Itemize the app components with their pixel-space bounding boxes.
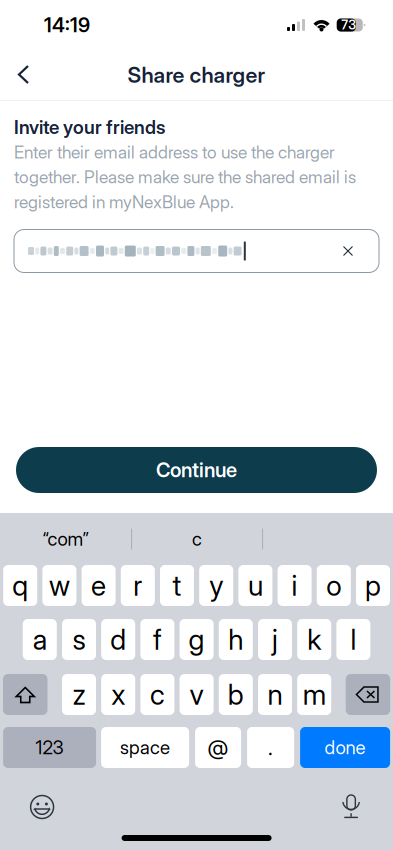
button[interactable]: y: [199, 565, 233, 606]
staticText: b: [228, 678, 244, 711]
staticText: j: [272, 623, 278, 656]
button[interactable]: “com”: [0, 516, 131, 562]
button[interactable]: Emoji: [20, 790, 64, 824]
button[interactable]: @: [195, 727, 241, 768]
staticText: y: [209, 569, 223, 602]
staticText: Invite your friends: [14, 116, 165, 139]
button[interactable]: s: [62, 619, 96, 660]
button[interactable]: d: [101, 619, 135, 660]
staticText: q: [12, 569, 28, 602]
staticText: c: [150, 678, 165, 711]
staticText: z: [72, 678, 85, 711]
button[interactable]: m: [297, 674, 331, 715]
button[interactable]: k: [297, 619, 331, 660]
button[interactable]: Continue: [16, 447, 377, 493]
button[interactable]: a: [23, 619, 57, 660]
button[interactable]: o: [317, 565, 351, 606]
staticText: t: [172, 569, 181, 602]
button[interactable]: g: [180, 619, 214, 660]
button[interactable]: r: [121, 565, 155, 606]
staticText: l: [350, 623, 356, 656]
button[interactable]: Shift: [3, 674, 47, 715]
staticText: m: [303, 678, 326, 711]
staticText: Share charger: [127, 62, 265, 88]
staticText: f: [153, 623, 162, 656]
button[interactable]: l: [336, 619, 370, 660]
staticText: .: [268, 735, 273, 760]
button[interactable]: Delete: [346, 674, 390, 715]
staticText: @: [208, 735, 229, 760]
button[interactable]: b: [219, 674, 253, 715]
staticText: g: [189, 623, 205, 656]
button[interactable]: q: [3, 565, 37, 606]
button[interactable]: w: [42, 565, 76, 606]
staticText: 73: [341, 17, 356, 33]
button[interactable]: c: [132, 516, 262, 562]
button[interactable]: x: [101, 674, 135, 715]
staticText: i: [292, 569, 298, 602]
button[interactable]: h: [219, 619, 253, 660]
button[interactable]: n: [258, 674, 292, 715]
staticText: 123: [36, 736, 64, 759]
staticText: x: [111, 678, 125, 711]
button[interactable]: z: [62, 674, 96, 715]
button[interactable]: u: [238, 565, 272, 606]
button[interactable]: j: [258, 619, 292, 660]
staticText: s: [72, 623, 85, 656]
staticText: o: [326, 569, 341, 602]
staticText: p: [365, 569, 381, 602]
staticText: d: [110, 623, 126, 656]
staticText: 14:19: [44, 13, 90, 37]
button[interactable]: p: [356, 565, 390, 606]
staticText: c: [192, 528, 202, 550]
staticText: k: [307, 623, 321, 656]
staticText: Enter their email address to use the cha…: [14, 142, 356, 212]
staticText: r: [133, 569, 142, 602]
staticText: Continue: [156, 458, 237, 482]
staticText: n: [267, 678, 282, 711]
button[interactable]: e: [82, 565, 116, 606]
staticText: h: [228, 623, 243, 656]
staticText: w: [49, 569, 70, 602]
staticText: e: [91, 569, 106, 602]
button[interactable]: 123: [3, 727, 96, 768]
staticText: u: [248, 569, 263, 602]
button[interactable]: i: [278, 565, 312, 606]
button[interactable]: Clear text: [331, 234, 365, 268]
button[interactable]: c: [140, 674, 174, 715]
button[interactable]: t: [160, 565, 194, 606]
button[interactable]: space: [101, 727, 189, 768]
button[interactable]: v: [180, 674, 214, 715]
staticText: done: [325, 736, 366, 759]
button[interactable]: f: [140, 619, 174, 660]
button[interactable]: Back: [0, 51, 56, 99]
button[interactable]: .: [247, 727, 294, 768]
staticText: space: [120, 736, 170, 759]
button[interactable]: done: [300, 727, 390, 768]
staticText: v: [190, 678, 204, 711]
staticText: “com”: [43, 528, 89, 550]
staticText: a: [33, 623, 47, 656]
button[interactable]: Dictate: [329, 790, 373, 824]
